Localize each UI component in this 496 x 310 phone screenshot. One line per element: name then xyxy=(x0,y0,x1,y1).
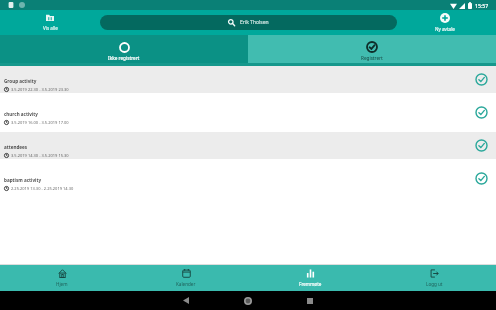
button[interactable]: Ny avtale xyxy=(428,13,462,32)
button[interactable]: attendees xyxy=(0,132,496,159)
staticText: 2.25.2019 13.30 - 2.25.2019 14.30 xyxy=(11,186,74,191)
staticText: Erik Tholsen xyxy=(240,19,269,26)
staticText: Registrert xyxy=(361,55,383,61)
staticText: 3.5.2019 16.00 - 3.5.2019 17.00 xyxy=(11,120,69,125)
button[interactable]: Vis alle xyxy=(36,14,64,31)
button[interactable]: Hjem xyxy=(0,265,124,291)
button[interactable]: church activity xyxy=(0,99,496,126)
button[interactable]: Erik Tholsen xyxy=(100,15,397,30)
staticText: baptism activity xyxy=(4,177,42,183)
staticText: Fremmøte xyxy=(299,281,322,287)
staticText: 15:57 xyxy=(475,2,489,9)
staticText: Hjem xyxy=(56,281,68,287)
staticText: attendees xyxy=(4,144,28,150)
button[interactable]: Logg ut xyxy=(372,265,496,291)
staticText: Vis alle xyxy=(43,25,58,31)
button[interactable]: Fremmøte xyxy=(248,265,372,291)
staticText: church activity xyxy=(4,111,38,117)
staticText: 3.5.2019 14.30 - 3.5.2019 15.30 xyxy=(11,153,69,158)
staticText: Ikke registrert xyxy=(108,55,140,61)
staticText: 3.5.2019 22.30 - 3.5.2019 23.30 xyxy=(11,87,69,92)
button[interactable]: Group activity xyxy=(0,66,496,93)
staticText: Group activity xyxy=(4,78,37,84)
button[interactable]: Registrert xyxy=(248,39,496,63)
button[interactable]: Kalender xyxy=(124,265,248,291)
staticText: Ny avtale xyxy=(435,26,455,32)
button[interactable]: baptism activity xyxy=(0,165,496,192)
button[interactable]: Ikke registrert xyxy=(0,39,248,63)
staticText: Logg ut xyxy=(426,281,443,287)
staticText: Kalender xyxy=(176,281,196,287)
